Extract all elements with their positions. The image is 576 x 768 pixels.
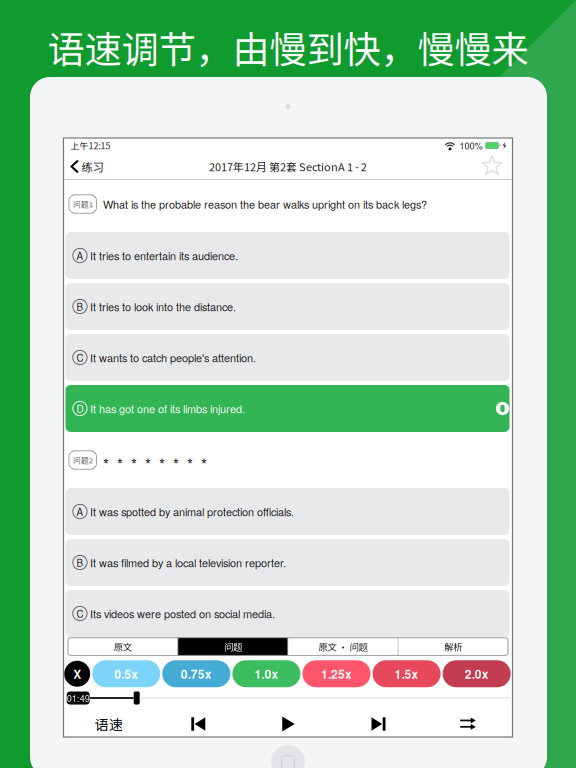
staticText: * * * * * * * * (103, 453, 207, 475)
staticText: 上午12:15 (70, 139, 110, 152)
button[interactable]: 原文 · 问题 (288, 638, 398, 655)
button[interactable]: B (65, 283, 509, 330)
staticText: 问题 (224, 640, 242, 653)
staticText: 2017年12月 第2套 SectionA 1 - 2 (209, 159, 367, 174)
staticText: It has got one of its limbs injured. (90, 401, 245, 416)
button[interactable]: Playback order (446, 709, 490, 739)
staticText: 语速调节，由慢到快，慢慢来 (47, 20, 528, 74)
staticText: It was filmed by a local television repo… (90, 555, 286, 570)
staticText: 练习 (81, 158, 103, 175)
button[interactable]: Previous track (176, 709, 220, 739)
button[interactable]: Next track (356, 709, 400, 739)
staticText: It was spotted by animal protection offi… (90, 504, 294, 519)
staticText: 语速 (95, 714, 123, 734)
button[interactable]: 解析 (398, 638, 508, 655)
button[interactable]: 1.25x (302, 660, 370, 687)
staticText: X (73, 665, 81, 682)
button[interactable]: 2.0x (443, 660, 511, 687)
button[interactable]: 练习 (63, 153, 112, 180)
staticText: 原文 · 问题 (319, 640, 368, 653)
staticText: 问题2 (73, 454, 93, 466)
staticText: D (76, 401, 83, 415)
staticText: 原文 (114, 640, 132, 653)
staticText: B (76, 299, 83, 313)
staticText: C (76, 606, 83, 620)
button[interactable]: C (65, 334, 509, 381)
button[interactable]: B (65, 539, 509, 586)
button[interactable]: Play (266, 709, 310, 739)
staticText: 问题1 (73, 198, 93, 210)
staticText: 1.5x (395, 665, 419, 682)
button[interactable]: 语速 (74, 709, 144, 739)
staticText: 2.0x (465, 665, 489, 682)
button[interactable]: 原文 (68, 638, 177, 655)
staticText: 1.25x (321, 665, 352, 682)
staticText: It tries to entertain its audience. (90, 248, 238, 263)
button[interactable]: A (65, 488, 509, 535)
staticText: 0.75x (181, 665, 212, 682)
staticText: What is the probable reason the bear wal… (103, 196, 427, 212)
staticText: It tries to look into the distance. (90, 299, 236, 314)
button[interactable]: 问题 (178, 638, 288, 655)
button[interactable]: C (65, 590, 509, 637)
staticText: 0.5x (114, 665, 138, 682)
button[interactable]: Cancel speed change (64, 661, 90, 687)
staticText: 解析 (444, 640, 462, 653)
button[interactable]: Favorite (472, 153, 512, 180)
button[interactable]: 0.5x (92, 660, 160, 687)
staticText: C (76, 350, 83, 364)
staticText: B (76, 555, 83, 569)
staticText: 01:49 (67, 691, 90, 704)
button[interactable]: A (65, 232, 509, 279)
button[interactable]: D (65, 385, 509, 432)
staticText: It wants to catch people's attention. (90, 350, 256, 365)
staticText: A (76, 248, 83, 262)
staticText: 1.0x (254, 665, 278, 682)
button[interactable]: 0.75x (162, 660, 230, 687)
staticText: A (76, 504, 83, 518)
button[interactable]: 1.5x (372, 660, 441, 687)
staticText: Its videos were posted on social media. (90, 606, 275, 621)
button[interactable]: 1.0x (232, 660, 300, 687)
staticText: 100% (459, 139, 482, 152)
